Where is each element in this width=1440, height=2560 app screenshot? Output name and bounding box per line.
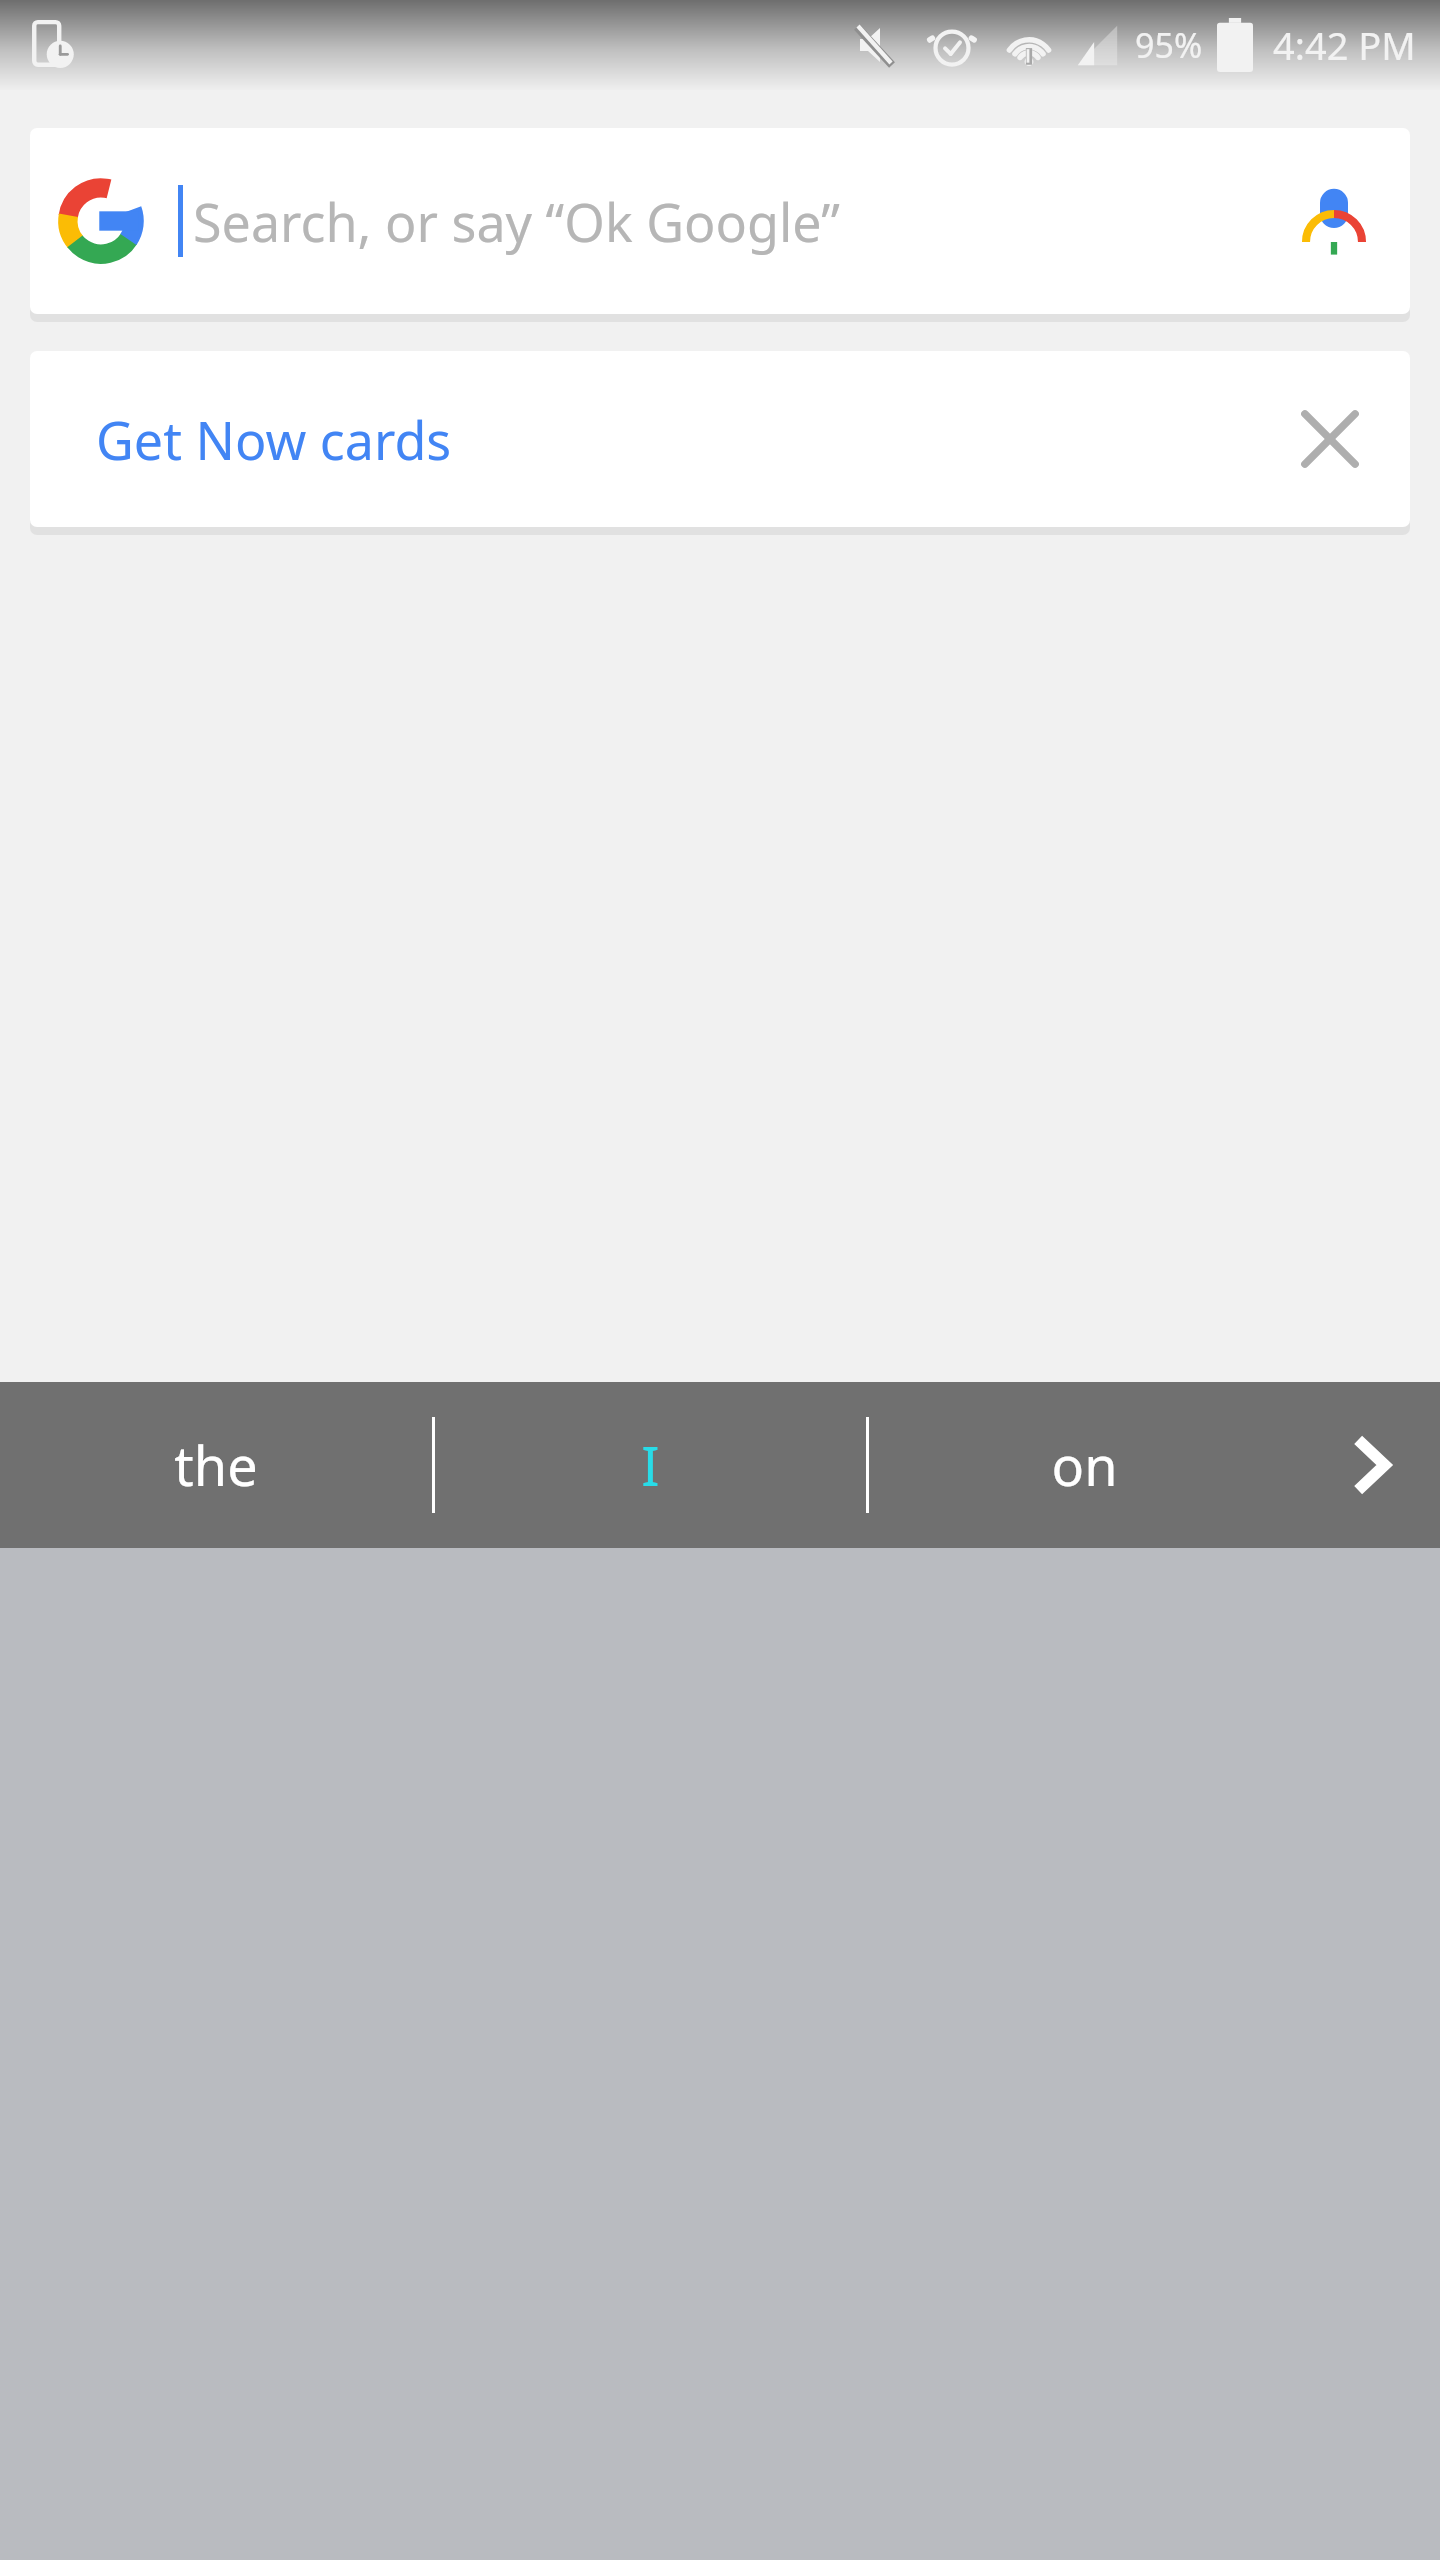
button[interactable]: on [869,1382,1300,1548]
button[interactable]: the [0,1382,432,1548]
staticText: the [174,1428,258,1502]
button[interactable]: I [435,1382,866,1548]
staticText: I [641,1428,660,1502]
button[interactable]: Get Now cards [30,351,1250,527]
staticText: 95% [1135,22,1203,68]
button[interactable]: Search, or say “Ok Google” [30,128,1410,314]
button[interactable]: More suggestions [1300,1382,1440,1548]
staticText: Search, or say “Ok Google” [193,186,1274,257]
button[interactable]: Voice search [1286,173,1382,269]
staticText: Get Now cards [96,404,452,475]
button[interactable]: Dismiss [1250,351,1410,527]
staticText: on [1051,1428,1118,1502]
staticText: 4:42 PM [1273,19,1416,71]
